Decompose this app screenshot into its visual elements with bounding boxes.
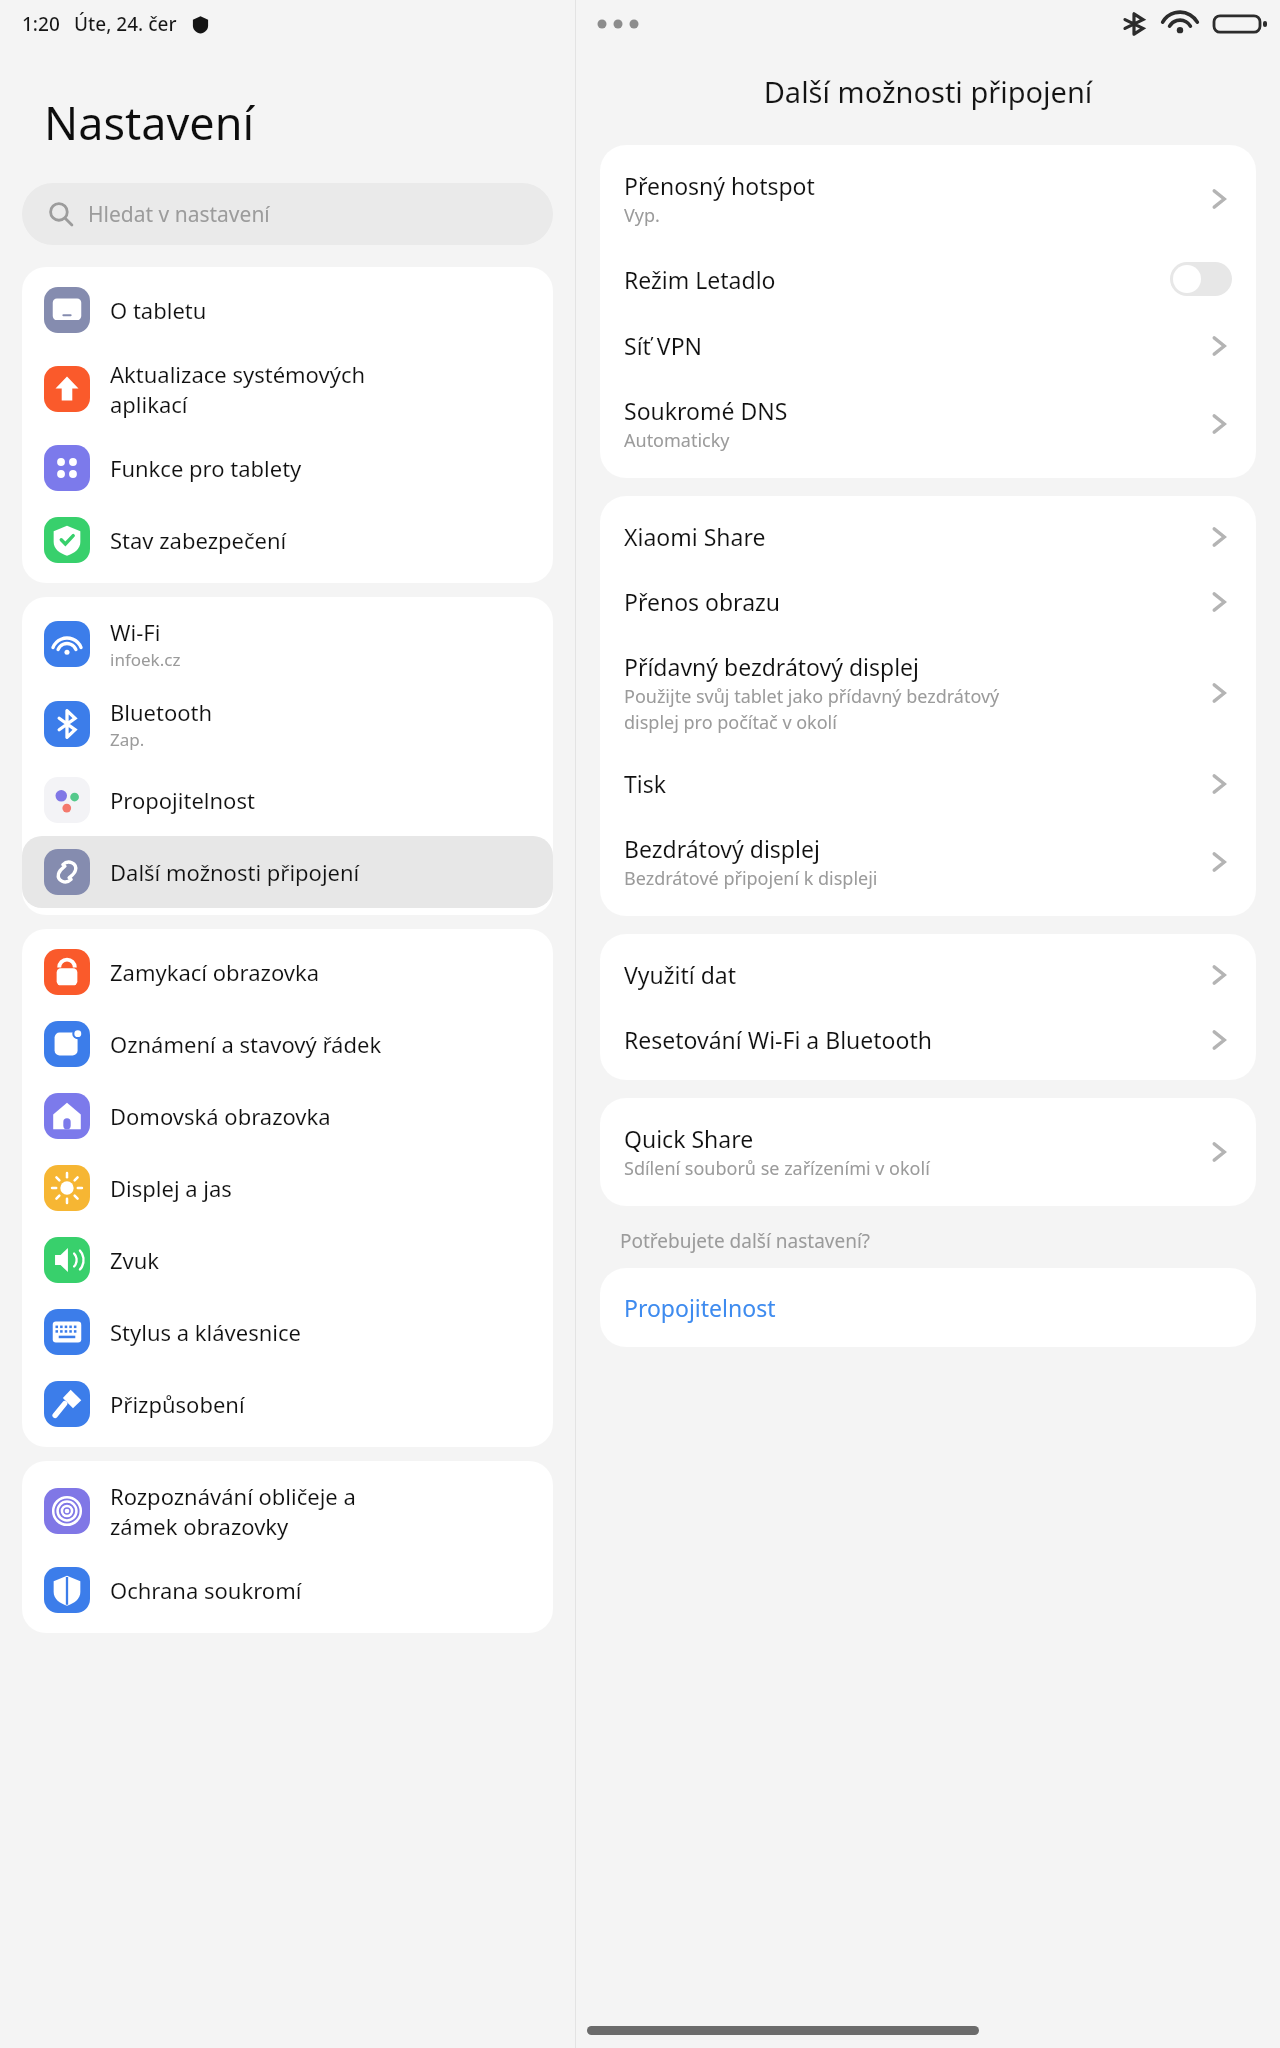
staticText: Úte, 24. čer [74,11,177,37]
button[interactable]: Stylus a klávesnice [22,1296,553,1368]
staticText: infoek.cz [110,648,181,671]
staticText: Přenos obrazu [624,586,781,617]
staticText: Potřebujete další nastavení? [620,1228,871,1254]
button[interactable]: Oznámení a stavový řádek [22,1008,553,1080]
staticText: Tisk [624,768,667,799]
button[interactable]: Propojitelnost [22,764,553,836]
button[interactable]: Režim Letadlo [600,245,1256,313]
staticText: Propojitelnost [110,785,255,815]
staticText: Síť VPN [624,330,703,361]
staticText: Zamykací obrazovka [110,957,320,987]
button[interactable]: Wi-Fi [22,604,553,684]
button[interactable]: Přenosný hotspot [600,153,1256,245]
staticText: Přídavný bezdrátový displej [624,651,920,682]
button[interactable]: Přídavný bezdrátový displej [600,634,1256,751]
staticText: Xiaomi Share [624,521,766,552]
button[interactable]: Bluetooth [22,684,553,764]
staticText: Oznámení a stavový řádek [110,1029,382,1059]
button[interactable]: Soukromé DNS [600,378,1256,470]
staticText: Bezdrátový displej [624,833,820,864]
staticText: Quick Share [624,1123,754,1154]
staticText: O tabletu [110,295,207,325]
staticText: Využití dat [624,959,737,990]
staticText: Resetování Wi-Fi a Bluetooth [624,1024,932,1055]
button[interactable]: Propojitelnost [600,1268,1256,1347]
other: More options [596,14,642,34]
staticText: Zap. [110,728,145,751]
staticText: Displej a jas [110,1173,232,1203]
button[interactable]: Airplane mode toggle [1170,262,1232,296]
staticText: Wi-Fi [110,617,161,647]
staticText: Stylus a klávesnice [110,1317,301,1347]
button[interactable]: O tabletu [22,274,553,346]
button[interactable]: Ochrana soukromí [22,1554,553,1626]
button[interactable]: Quick Share [600,1106,1256,1198]
staticText: Vyp. [624,203,660,228]
button[interactable]: Další možnosti připojení [22,836,553,908]
staticText: Rozpoznávání obličeje a zámek obrazovky [110,1481,356,1541]
staticText: Hledat v nastavení [88,200,270,229]
staticText: Režim Letadlo [624,264,776,295]
staticText: Použijte svůj tablet jako přídavný bezdr… [624,684,1000,734]
button[interactable]: Přizpůsobení [22,1368,553,1440]
button[interactable]: Tisk [600,751,1256,816]
button[interactable]: Hledat v nastavení [22,183,553,245]
button[interactable]: Bezdrátový displej [600,816,1256,908]
button[interactable]: Síť VPN [600,313,1256,378]
button[interactable]: Aktualizace systémových aplikací [22,346,553,432]
staticText: Přenosný hotspot [624,170,815,201]
staticText: Další možnosti připojení [110,857,360,887]
button[interactable]: Stav zabezpečení [22,504,553,576]
button[interactable]: Domovská obrazovka [22,1080,553,1152]
staticText: Domovská obrazovka [110,1101,331,1131]
button[interactable]: Zamykací obrazovka [22,936,553,1008]
button[interactable]: Zvuk [22,1224,553,1296]
button[interactable]: Resetování Wi-Fi a Bluetooth [600,1007,1256,1072]
button[interactable]: Displej a jas [22,1152,553,1224]
staticText: Aktualizace systémových aplikací [110,359,366,419]
staticText: Automaticky [624,428,730,453]
button[interactable]: Funkce pro tablety [22,432,553,504]
staticText: Ochrana soukromí [110,1575,302,1605]
staticText: Stav zabezpečení [110,525,287,555]
staticText: Sdílení souborů se zařízeními v okolí [624,1156,930,1181]
button[interactable]: Využití dat [600,942,1256,1007]
staticText: Zvuk [110,1245,160,1275]
staticText: Bluetooth [110,697,213,727]
staticText: Nastavení [44,92,255,153]
staticText: 1:20 [22,11,60,37]
staticText: Funkce pro tablety [110,453,302,483]
staticText: Soukromé DNS [624,395,788,426]
button[interactable]: Rozpoznávání obličeje a zámek obrazovky [22,1468,553,1554]
button[interactable]: Přenos obrazu [600,569,1256,634]
staticText: Další možnosti připojení [576,72,1280,111]
staticText: Přizpůsobení [110,1389,245,1419]
button[interactable]: Xiaomi Share [600,504,1256,569]
staticText: Propojitelnost [624,1292,776,1323]
staticText: Bezdrátové připojení k displeji [624,866,878,891]
